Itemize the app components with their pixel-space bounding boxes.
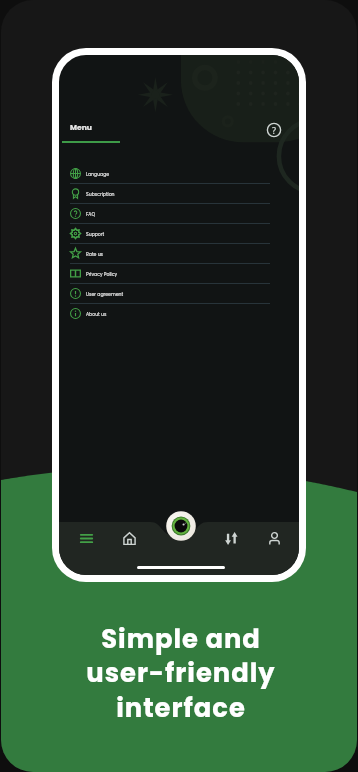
- button[interactable]: Rate us: [59, 244, 299, 263]
- staticText: Simple and user-friendly interface: [86, 621, 276, 726]
- button[interactable]: Menu: [70, 524, 102, 552]
- staticText: Menu: [70, 122, 92, 133]
- button[interactable]: Privacy Policy: [59, 264, 299, 283]
- button[interactable]: Transfer: [215, 524, 247, 552]
- button[interactable]: Subscription: [59, 184, 299, 203]
- staticText: Support: [86, 231, 105, 237]
- button[interactable]: User agreement: [59, 284, 299, 303]
- button[interactable]: Profile: [258, 524, 290, 552]
- staticText: User agreement: [86, 291, 124, 297]
- button[interactable]: Support: [59, 224, 299, 243]
- staticText: FAQ: [86, 211, 96, 217]
- button[interactable]: FAQ: [59, 204, 299, 223]
- staticText: Subscription: [86, 191, 115, 197]
- staticText: Privacy Policy: [86, 271, 118, 277]
- button[interactable]: About us: [59, 304, 299, 323]
- button[interactable]: Language: [59, 164, 299, 183]
- staticText: Language: [86, 171, 110, 177]
- button[interactable]: Home: [113, 524, 145, 552]
- staticText: Rate us: [86, 251, 103, 257]
- button[interactable]: Help: [263, 119, 285, 141]
- staticText: About us: [86, 311, 107, 317]
- button[interactable]: Scan: [164, 509, 198, 543]
- staticText: ?: [272, 124, 277, 136]
